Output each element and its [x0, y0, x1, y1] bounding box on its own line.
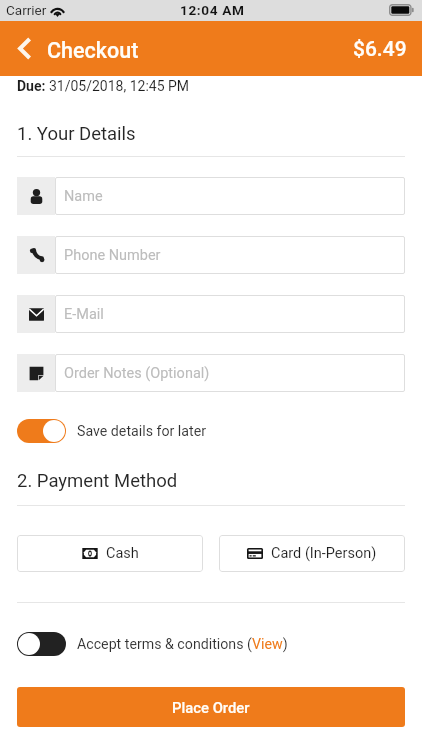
staticText: Save details for later	[77, 423, 206, 440]
staticText: Checkout	[47, 38, 139, 63]
button[interactable]: Order Notes (Optional)	[17, 354, 405, 392]
staticText: Name	[64, 188, 103, 205]
button[interactable]: Cash	[17, 535, 203, 572]
button[interactable]: Place Order	[17, 687, 405, 727]
staticText: Cash	[106, 545, 139, 562]
staticText: Card (In-Person)	[271, 545, 377, 562]
staticText: Accept terms & conditions (View)	[77, 636, 288, 653]
staticText: Order Notes (Optional)	[64, 365, 210, 382]
button[interactable]: Card (In-Person)	[219, 535, 405, 572]
staticText: 1. Your Details	[17, 123, 136, 145]
button[interactable]: Back	[4, 28, 44, 68]
button[interactable]: Save details for later	[17, 419, 405, 443]
button[interactable]: Phone Number	[17, 236, 405, 274]
staticText: 12:04 AM	[180, 2, 245, 18]
staticText: 2. Payment Method	[17, 470, 178, 492]
button[interactable]: E-Mail	[17, 295, 405, 333]
button[interactable]: Name	[17, 177, 405, 215]
staticText: Place Order	[172, 699, 250, 716]
staticText: Due: 31/05/2018, 12:45 PM	[17, 78, 190, 94]
staticText: Carrier	[6, 2, 47, 18]
staticText: Phone Number	[64, 247, 161, 264]
staticText: E-Mail	[64, 306, 104, 323]
staticText: $6.49	[353, 37, 407, 62]
button[interactable]: Accept terms & conditions (View)	[17, 632, 405, 656]
